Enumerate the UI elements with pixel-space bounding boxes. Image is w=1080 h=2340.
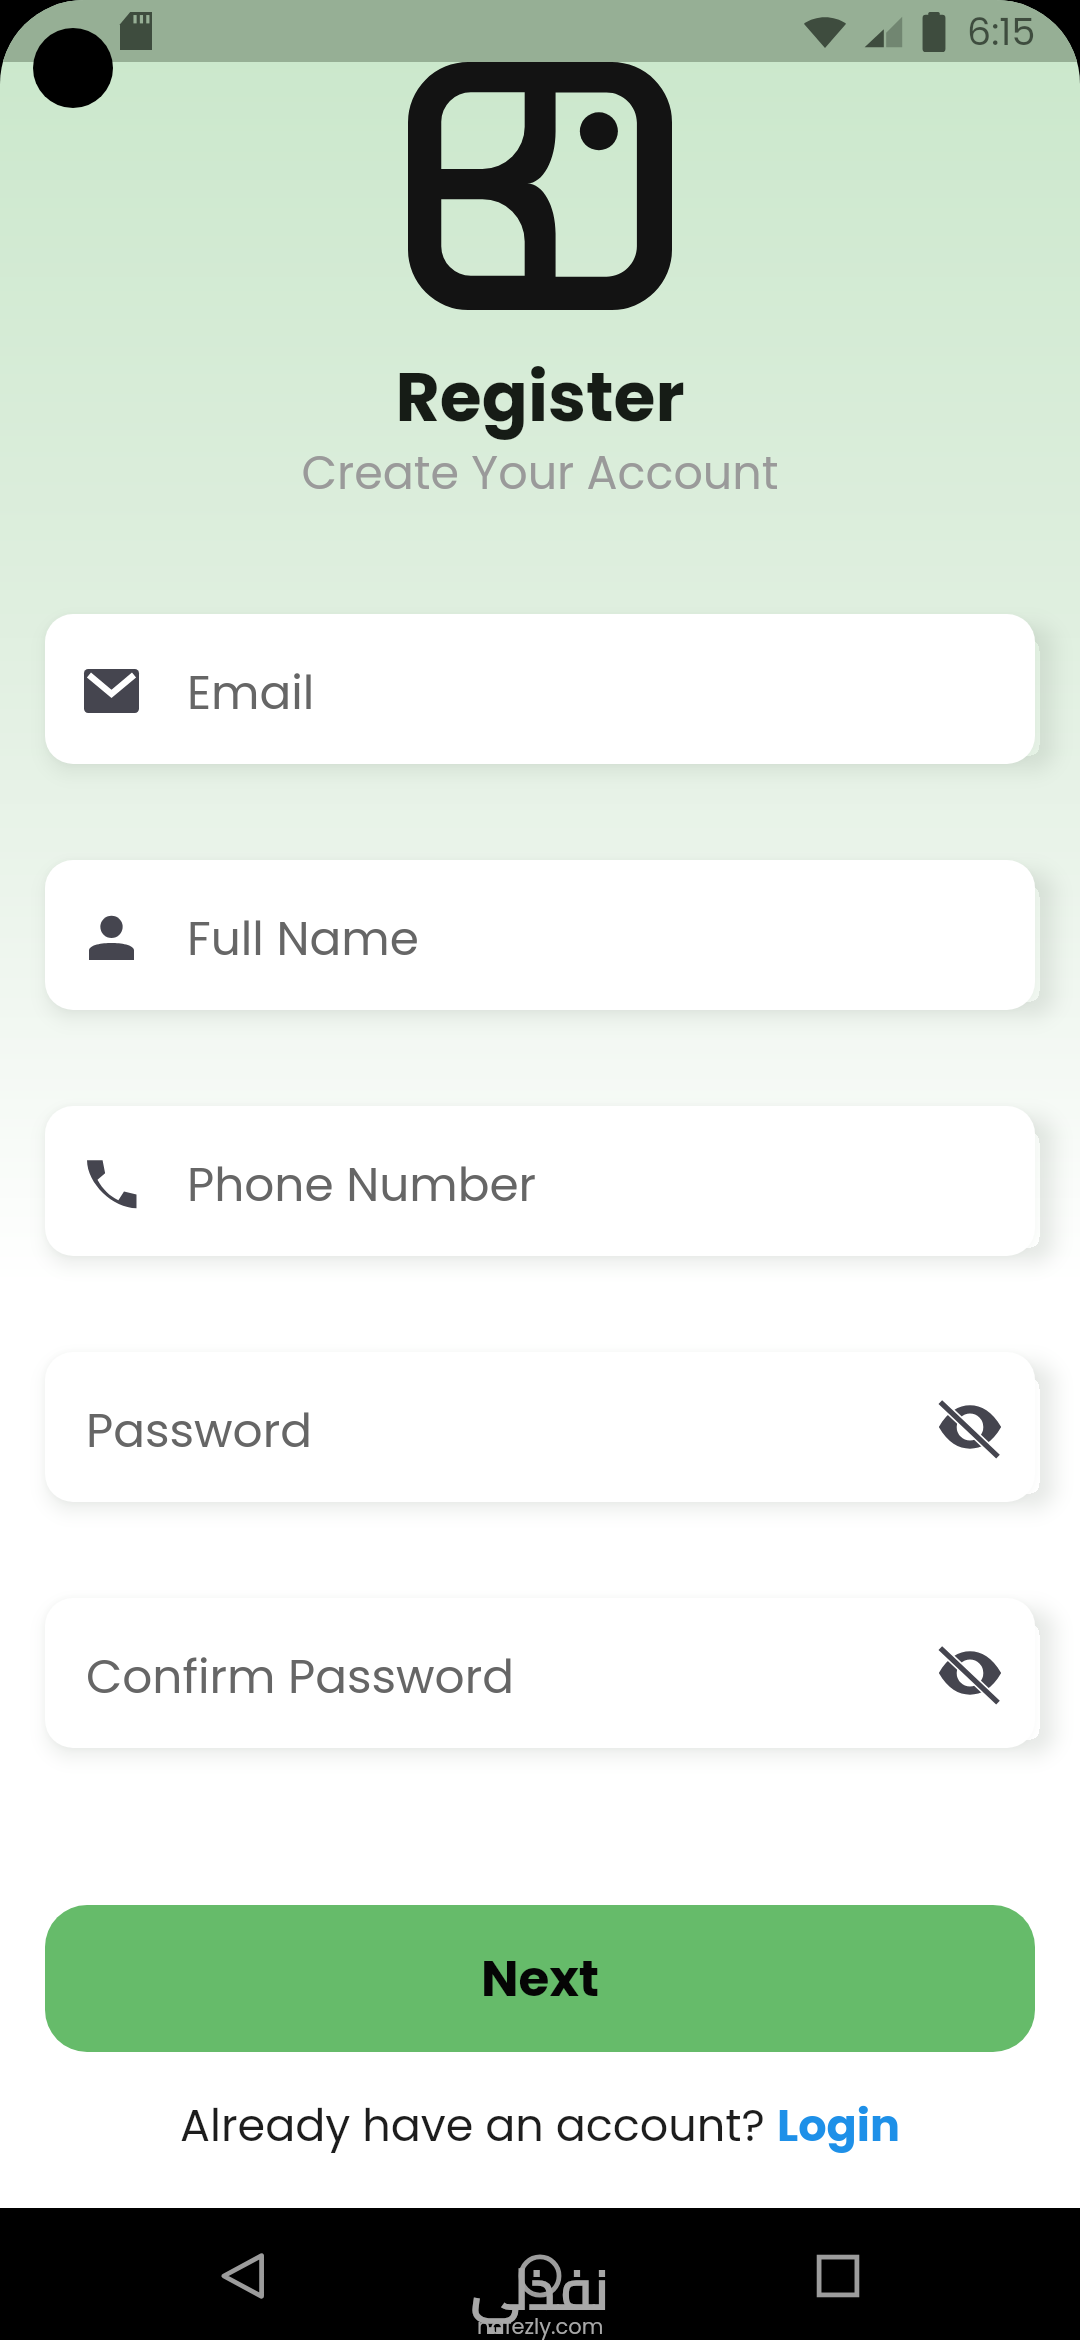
staticText: Already have an account? [180,2094,777,2156]
button[interactable]: Toggle password visibility [931,1388,1009,1466]
staticText: Create Your Account [0,441,1080,505]
staticText: Phone Number [187,1152,537,1218]
staticText: 6:15 [967,5,1036,58]
staticText: نفذلي [471,2236,609,2340]
button[interactable]: Confirm Password [45,1598,1035,1748]
staticText: Next [481,1944,600,2014]
button[interactable]: Email [45,614,1035,764]
button[interactable]: Password [45,1352,1035,1502]
button[interactable]: Back [207,2241,277,2311]
button[interactable]: Next [45,1905,1035,2052]
staticText: Register [0,350,1080,445]
button[interactable]: Full Name [45,860,1035,1010]
button[interactable]: Recent apps [803,2241,873,2311]
button[interactable]: Toggle password visibility [931,1634,1009,1712]
staticText: Password [86,1398,312,1464]
staticText: Email [187,660,315,726]
staticText: Confirm Password [86,1644,514,1710]
staticText: Full Name [187,906,419,972]
staticText: Login [777,2094,900,2156]
button[interactable]: Phone Number [45,1106,1035,1256]
button[interactable]: Home [505,2241,575,2311]
staticText: nafezly.com [477,2312,604,2340]
button[interactable]: Login [777,2094,900,2156]
